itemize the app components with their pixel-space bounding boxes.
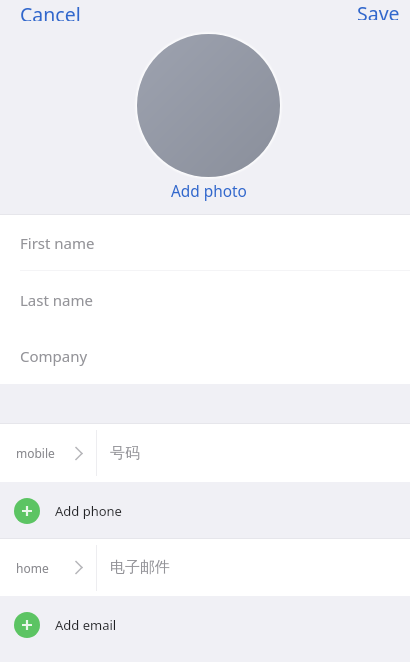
staticText: Cancel (20, 1, 81, 21)
button[interactable]: mobile (0, 424, 96, 482)
staticText: Company (20, 346, 88, 366)
button[interactable]: Company (0, 328, 410, 384)
button[interactable]: Profile photo (137, 34, 280, 177)
staticText: 电子邮件 (110, 558, 170, 577)
staticText: Add photo (171, 181, 247, 202)
staticText: Add email (55, 616, 117, 634)
button[interactable]: 号码 (97, 424, 410, 482)
button[interactable]: Save (343, 0, 410, 25)
button[interactable]: Cancel (8, 0, 95, 26)
staticText: mobile (16, 445, 55, 461)
button[interactable]: 电子邮件 (97, 539, 410, 596)
button[interactable]: home (0, 539, 96, 596)
button[interactable]: Add email (0, 596, 410, 662)
staticText: 号码 (110, 444, 140, 463)
staticText: home (16, 560, 49, 576)
staticText: Save (357, 0, 400, 20)
button[interactable]: First name (0, 215, 410, 271)
button[interactable]: Last name (0, 271, 410, 328)
button[interactable]: Add phone (0, 482, 410, 538)
staticText: First name (20, 233, 95, 253)
staticText: Add phone (55, 502, 122, 520)
button[interactable]: Add photo (161, 176, 257, 207)
staticText: Last name (20, 290, 93, 310)
